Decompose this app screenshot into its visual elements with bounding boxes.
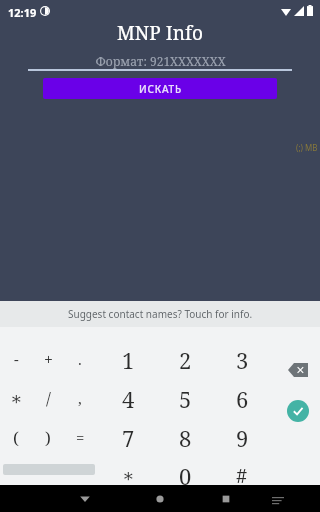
button[interactable]: 4 [112,384,144,412]
button[interactable]: ( [0,423,32,451]
button[interactable]: Home [154,493,166,505]
button[interactable]: , [64,384,96,412]
button[interactable]: + [32,345,64,373]
staticText: 12:19 [8,5,37,20]
button[interactable]: 9 [226,423,258,451]
button[interactable]: Delete [288,363,308,377]
staticText: , [78,388,82,408]
button[interactable]: Формат: 921XXXXXXX [28,50,292,72]
button[interactable]: 6 [226,384,258,412]
staticText: ИСКАТЬ [139,82,182,96]
button[interactable]: Switch input method [272,494,284,506]
button[interactable]: 2 [169,345,201,373]
staticText: # [236,462,248,489]
staticText: 2 [179,345,192,373]
staticText: 4 [122,384,135,412]
button[interactable]: ∗ [0,384,32,412]
button[interactable]: Enter [287,400,309,422]
button[interactable]: # [226,461,258,489]
button[interactable]: 1 [112,345,144,373]
staticText: (;) MB [296,142,318,153]
button[interactable]: / [32,384,64,412]
staticText: ∗ [10,388,23,409]
button[interactable]: 8 [169,423,201,451]
button[interactable]: 3 [226,345,258,373]
button[interactable]: 0 [169,461,201,489]
button[interactable]: = [64,423,96,451]
staticText: 1 [122,345,135,373]
staticText: 7 [122,423,135,451]
staticText: 3 [236,345,249,373]
staticText: Формат: 921XXXXXXX [95,53,226,69]
staticText: Suggest contact names? Touch for info. [68,307,253,321]
button[interactable]: Recents [220,493,232,505]
button[interactable]: ИСКАТЬ [43,78,277,99]
staticText: - [14,349,19,369]
staticText: + [44,348,53,370]
button[interactable]: . [64,345,96,373]
button[interactable]: 7 [112,423,144,451]
staticText: 6 [236,384,249,412]
staticText: 5 [179,384,192,412]
staticText: ) [45,426,51,449]
button[interactable]: ) [32,423,64,451]
button[interactable]: - [0,345,32,373]
staticText: / [46,387,51,410]
staticText: 8 [179,423,192,451]
staticText: 9 [236,423,249,451]
staticText: . [78,349,82,369]
staticText: ( [13,426,19,449]
button[interactable]: 5 [169,384,201,412]
button[interactable]: Back [79,493,91,505]
staticText: ∗ [122,465,135,486]
button[interactable]: Suggest contact names? Touch for info. [0,301,320,327]
button[interactable]: ∗ [112,461,144,489]
staticText: = [76,427,85,447]
staticText: 0 [179,461,192,489]
staticText: MNP Info [117,20,203,46]
